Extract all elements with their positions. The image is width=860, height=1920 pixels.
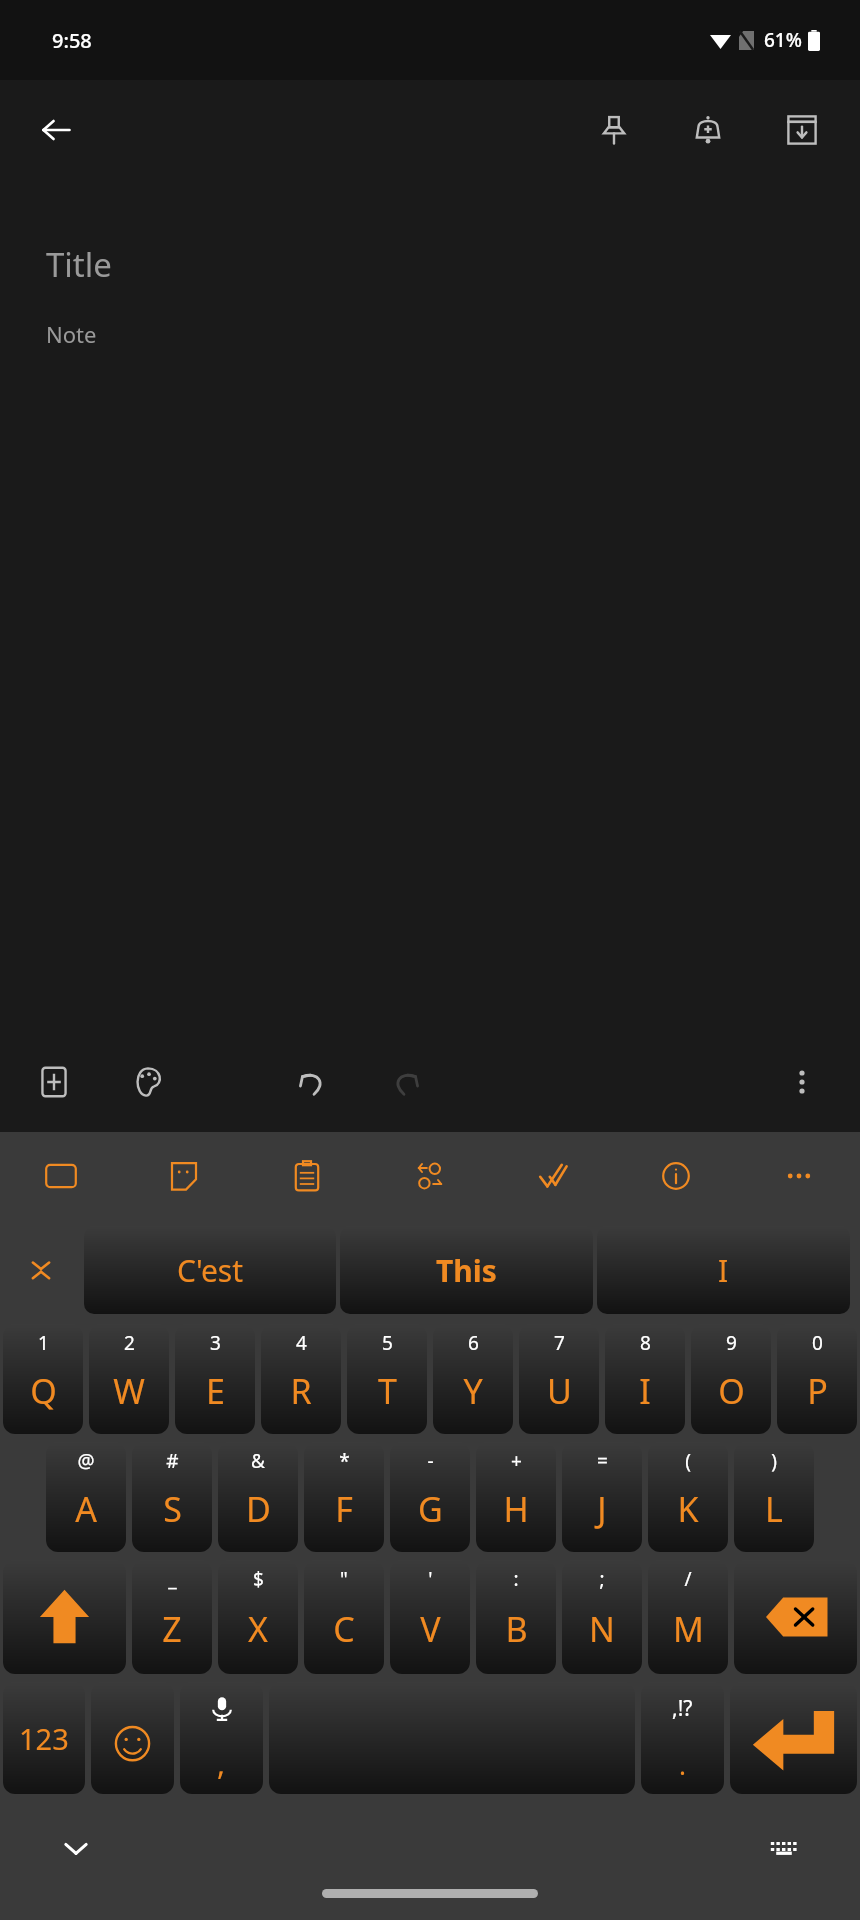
staticText: E [206,1368,225,1414]
button[interactable]: C'est [84,1226,336,1314]
staticText: : [513,1566,519,1592]
button[interactable]: Expand suggestions [0,1220,82,1320]
button[interactable]: # [132,1442,212,1552]
staticText: 4 [296,1330,307,1356]
button[interactable]: Shift [3,1560,126,1674]
button[interactable]: Backspace [734,1560,857,1674]
staticText: * [339,1448,350,1474]
button[interactable]: Sticker [122,1132,245,1220]
button[interactable]: Undo [280,1050,344,1114]
button[interactable]: Info [614,1132,737,1220]
button[interactable]: - [390,1442,470,1552]
button[interactable]: Translate [368,1132,491,1220]
button[interactable]: * [304,1442,384,1552]
button[interactable]: _ [132,1560,212,1674]
staticText: " [340,1566,348,1592]
staticText: I [718,1250,729,1291]
staticText: K [677,1486,699,1532]
button[interactable]: 9 [691,1324,771,1434]
staticText: , [217,1743,226,1784]
staticText: ; [599,1566,605,1592]
staticText: N [589,1606,615,1652]
button[interactable]: 1 [3,1324,83,1434]
button[interactable]: ) [734,1442,814,1552]
staticText: F [335,1486,353,1532]
button[interactable]: Enter [730,1682,857,1794]
button[interactable]: More options [770,1050,834,1114]
staticText: $ [253,1566,264,1592]
button[interactable]: This [340,1226,593,1314]
staticText: - [427,1448,434,1474]
staticText: 3 [210,1330,221,1356]
button[interactable]: Redo [374,1050,438,1114]
button[interactable]: Pin [582,98,646,162]
staticText: L [765,1486,783,1532]
button[interactable]: : [476,1560,556,1674]
button[interactable]: ( [648,1442,728,1552]
button[interactable]: Hide keyboard [48,1820,104,1876]
button[interactable]: 0 [777,1324,857,1434]
button[interactable]: @ [46,1442,126,1552]
staticText: # [166,1448,179,1474]
staticText: C'est [177,1250,244,1291]
staticText: 2 [124,1330,135,1356]
button[interactable]: & [218,1442,298,1552]
staticText: Y [463,1368,483,1414]
button[interactable]: 8 [605,1324,685,1434]
button[interactable]: Reminder [676,98,740,162]
button[interactable]: 123 [3,1682,85,1794]
button[interactable]: Clipboard [245,1132,368,1220]
staticText: 123 [19,1719,69,1758]
staticText: 1 [38,1330,49,1356]
staticText: X [248,1606,268,1652]
button[interactable]: 4 [261,1324,341,1434]
button[interactable]: ; [562,1560,642,1674]
button[interactable]: 5 [347,1324,427,1434]
button[interactable]: Switch keyboard [756,1820,812,1876]
staticText: T [378,1368,397,1414]
staticText: 61% [764,27,802,53]
staticText: M [673,1606,704,1652]
button[interactable]: = [562,1442,642,1552]
staticText: Note [46,319,97,349]
staticText: @ [77,1448,95,1474]
staticText: W [113,1368,145,1414]
button[interactable]: More [737,1132,860,1220]
button[interactable]: 7 [519,1324,599,1434]
button[interactable]: $ [218,1560,298,1674]
staticText: O [718,1368,745,1414]
button[interactable]: Period [641,1682,724,1794]
button[interactable]: 3 [175,1324,255,1434]
staticText: B [505,1606,528,1652]
staticText: 9 [726,1330,737,1356]
button[interactable]: Voice input and comma [180,1682,263,1794]
staticText: 7 [554,1330,565,1356]
button[interactable]: Emoji [91,1682,174,1794]
button[interactable]: 2 [89,1324,169,1434]
staticText: This [436,1250,497,1291]
staticText: Z [162,1606,182,1652]
staticText: V [420,1606,441,1652]
button[interactable]: ' [390,1560,470,1674]
button[interactable]: Archive [770,98,834,162]
staticText: P [807,1368,828,1414]
button[interactable]: Space [269,1682,635,1794]
staticText: A [75,1486,97,1532]
button[interactable]: + [476,1442,556,1552]
staticText: & [251,1448,265,1474]
button[interactable]: I [597,1226,850,1314]
staticText: _ [168,1566,177,1592]
staticText: S [163,1486,182,1532]
button[interactable]: / [648,1560,728,1674]
button[interactable]: 6 [433,1324,513,1434]
staticText: = [597,1448,608,1474]
button[interactable]: Back [24,98,88,162]
button[interactable]: GIF [0,1132,122,1220]
button[interactable]: Add [22,1050,86,1114]
staticText: . [679,1747,686,1782]
staticText: ' [428,1566,433,1592]
button[interactable]: " [304,1560,384,1674]
button[interactable]: Colour [116,1050,180,1114]
staticText: G [418,1486,443,1532]
button[interactable]: Edit [491,1132,614,1220]
